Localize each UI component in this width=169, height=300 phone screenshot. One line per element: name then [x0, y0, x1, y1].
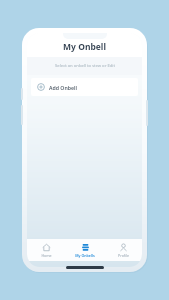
button[interactable]: Profile: [104, 239, 142, 261]
staticText: My Onbell: [63, 41, 106, 53]
staticText: Add Onbell: [49, 84, 77, 91]
staticText: My Onbells: [75, 253, 95, 258]
button[interactable]: My Onbells: [66, 239, 104, 261]
staticText: Home: [41, 253, 52, 258]
staticText: Profile: [118, 253, 129, 258]
button[interactable]: Home: [27, 239, 66, 261]
button[interactable]: Add Onbell: [31, 78, 138, 96]
staticText: Select an onbell to view or Edit: [55, 63, 115, 69]
